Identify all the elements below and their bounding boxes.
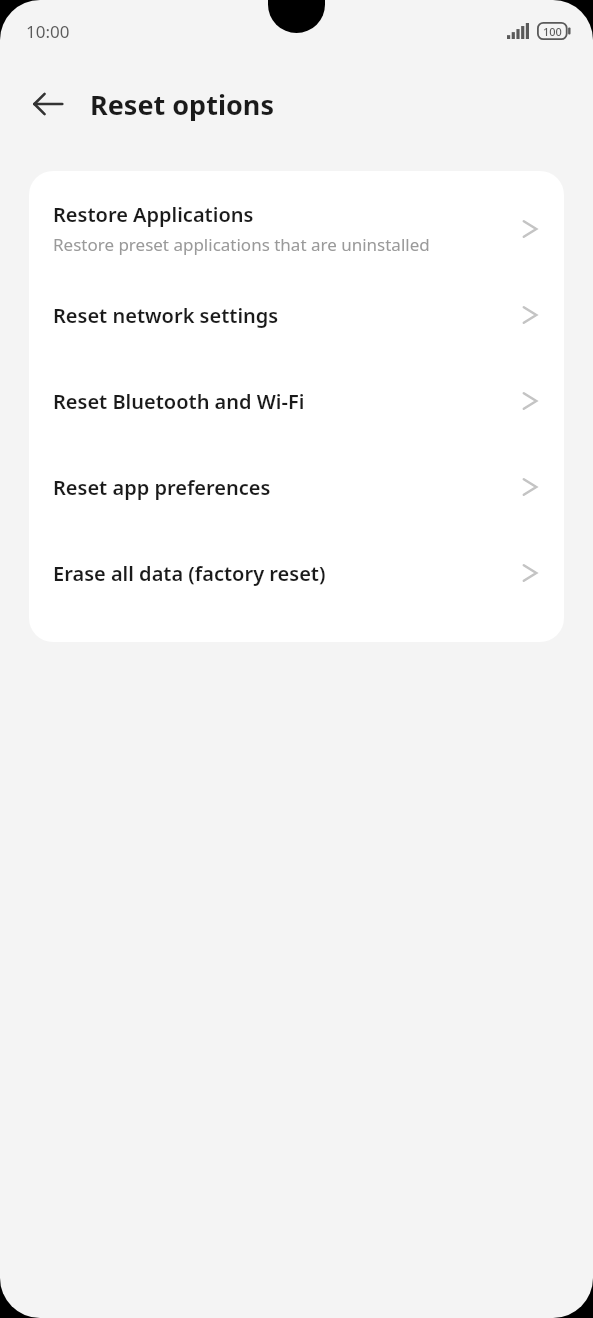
staticText: Reset network settings xyxy=(53,302,504,329)
button[interactable]: Restore Applications xyxy=(29,171,564,272)
staticText: Restore Applications xyxy=(53,201,254,228)
staticText: 100 xyxy=(543,24,562,39)
staticText: Reset app preferences xyxy=(53,474,504,501)
staticText: Restore preset applications that are uni… xyxy=(53,233,430,256)
button[interactable]: Reset network settings xyxy=(29,272,564,358)
button[interactable]: Reset app preferences xyxy=(29,444,564,530)
button[interactable]: Reset Bluetooth and Wi-Fi xyxy=(29,358,564,444)
staticText: 10:00 xyxy=(26,20,70,43)
button[interactable]: Erase all data (factory reset) xyxy=(29,530,564,616)
staticText: Erase all data (factory reset) xyxy=(53,560,504,587)
staticText: Reset Bluetooth and Wi-Fi xyxy=(53,388,504,415)
staticText: Reset options xyxy=(90,86,274,123)
button[interactable]: Back xyxy=(24,80,72,128)
